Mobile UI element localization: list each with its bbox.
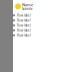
staticText: Name (22, 2, 33, 7)
staticText: Row label (17, 24, 31, 27)
staticText: Row label (17, 14, 31, 17)
staticText: Row label (17, 29, 31, 32)
staticText: Row label (17, 19, 31, 22)
staticText: Subtitle (22, 7, 33, 11)
staticText: Row label (17, 34, 31, 37)
